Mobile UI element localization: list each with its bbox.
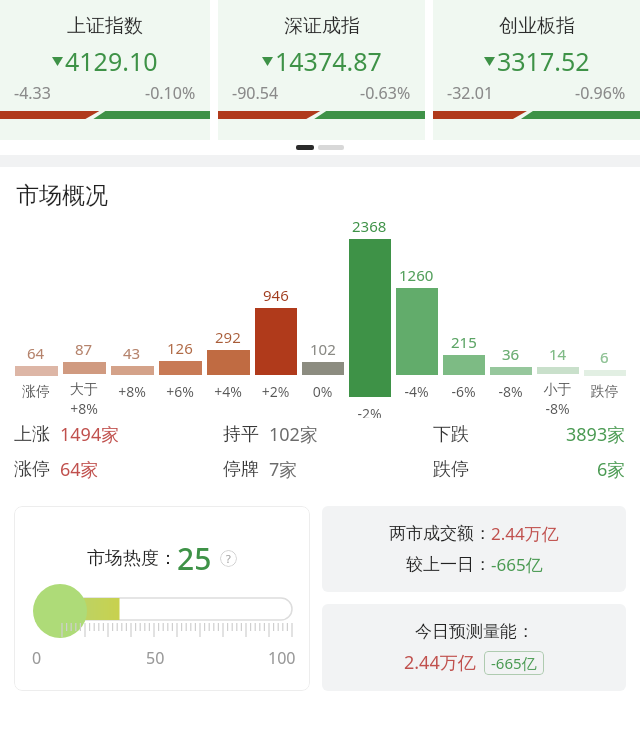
button[interactable]: 创业板指 xyxy=(433,0,640,140)
staticText: +2% xyxy=(252,382,299,401)
staticText: 2368 xyxy=(352,216,387,236)
staticText: -4% xyxy=(393,382,440,401)
staticText: 3317.52 xyxy=(497,44,590,78)
button[interactable]: 今日预测量能： xyxy=(322,604,626,691)
staticText: -8% xyxy=(534,399,581,418)
staticText: 87 xyxy=(75,339,93,359)
staticText: 1260 xyxy=(399,265,434,285)
staticText: 50 xyxy=(146,647,165,669)
staticText: -0.10% xyxy=(145,82,196,104)
staticText: -6% xyxy=(440,382,487,401)
staticText: 涨停 xyxy=(14,458,50,481)
button[interactable]: 上证指数 xyxy=(0,0,210,140)
staticText: 停牌 xyxy=(223,458,259,481)
staticText: ? xyxy=(226,551,231,566)
staticText: 1494家 xyxy=(60,422,120,447)
staticText: +8% xyxy=(60,399,108,418)
staticText: 跌停 xyxy=(433,458,469,481)
staticText: 25 xyxy=(177,538,212,579)
staticText: 涨停 xyxy=(12,383,60,401)
staticText: 215 xyxy=(451,332,477,352)
staticText: 市场热度： xyxy=(87,547,177,570)
staticText: 小于 xyxy=(534,381,581,399)
staticText: -0.96% xyxy=(575,82,626,104)
staticText: 36 xyxy=(502,344,520,364)
button[interactable]: 深证成指 xyxy=(218,0,425,140)
staticText: +8% xyxy=(108,382,156,401)
staticText: 市场概况 xyxy=(16,181,108,210)
staticText: +6% xyxy=(156,382,204,401)
staticText: 创业板指 xyxy=(499,14,575,38)
staticText: 946 xyxy=(263,285,289,305)
staticText: 14 xyxy=(549,344,567,364)
staticText: 2.44万亿 xyxy=(491,522,559,545)
staticText: 14374.87 xyxy=(275,44,382,78)
staticText: 4129.10 xyxy=(65,44,158,78)
staticText: -665亿 xyxy=(491,553,543,576)
staticText: 64家 xyxy=(60,457,99,482)
button[interactable]: 帮助 xyxy=(220,550,237,567)
staticText: 126 xyxy=(167,338,193,358)
staticText: 100 xyxy=(268,647,296,669)
staticText: 今日预测量能： xyxy=(415,621,534,642)
staticText: 持平 xyxy=(223,423,259,446)
staticText: -4.33 xyxy=(14,82,51,104)
staticText: 两市成交额： xyxy=(389,523,491,544)
staticText: 0% xyxy=(299,382,346,401)
staticText: 102 xyxy=(310,339,336,359)
staticText: 7家 xyxy=(269,457,298,482)
staticText: -32.01 xyxy=(447,82,494,104)
button[interactable]: 两市成交额： xyxy=(322,506,626,592)
staticText: 较上一日： xyxy=(406,554,491,575)
staticText: 6家 xyxy=(597,457,626,482)
staticText: -90.54 xyxy=(232,82,279,104)
staticText: 跌停 xyxy=(581,383,628,401)
staticText: 上证指数 xyxy=(67,14,143,38)
staticText: -2% xyxy=(346,404,393,418)
staticText: 下跌 xyxy=(433,423,469,446)
staticText: 292 xyxy=(215,327,241,347)
staticText: -0.63% xyxy=(360,82,411,104)
staticText: 6 xyxy=(600,347,609,367)
staticText: -8% xyxy=(487,382,534,401)
button[interactable]: 市场热度： xyxy=(14,506,310,691)
staticText: 大于 xyxy=(60,381,108,399)
staticText: 上涨 xyxy=(14,423,50,446)
staticText: 3893家 xyxy=(566,422,626,447)
staticText: -665亿 xyxy=(491,653,537,673)
staticText: 0 xyxy=(32,647,42,669)
staticText: 102家 xyxy=(269,422,318,447)
staticText: 64 xyxy=(27,343,45,363)
staticText: 43 xyxy=(123,343,141,363)
staticText: 深证成指 xyxy=(284,14,360,38)
staticText: +4% xyxy=(204,382,252,401)
staticText: 2.44万亿 xyxy=(404,650,476,675)
